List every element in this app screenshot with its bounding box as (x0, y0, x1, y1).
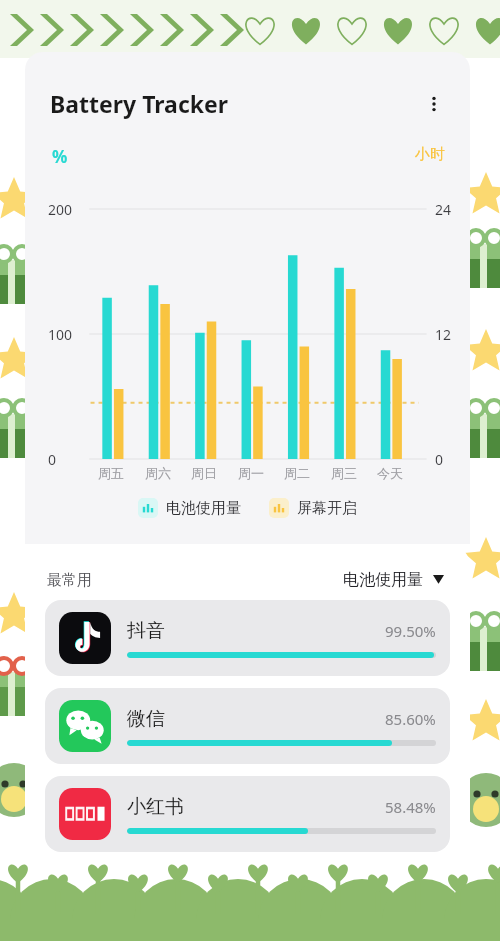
staticText: 最常用 (47, 571, 92, 590)
staticText: 24 (435, 200, 452, 219)
button[interactable]: More options (420, 90, 448, 118)
staticText: 85.60% (385, 709, 436, 729)
staticText: 100 (48, 325, 73, 344)
staticText: 99.50% (385, 621, 436, 641)
staticText: 200 (48, 200, 73, 219)
staticText: % (52, 145, 68, 168)
button[interactable]: 抖音 (45, 600, 450, 676)
staticText: 周五 (90, 465, 132, 481)
staticText: 电池使用量 (166, 499, 241, 518)
button[interactable]: 小红书 (45, 776, 450, 852)
staticText: 周三 (323, 465, 365, 481)
staticText: 屏幕开启 (297, 499, 357, 518)
button[interactable]: 微信 (45, 688, 450, 764)
staticText: 周日 (183, 465, 225, 481)
staticText: 周六 (137, 465, 179, 481)
staticText: 58.48% (385, 797, 436, 817)
staticText: 0 (435, 450, 444, 469)
staticText: 周一 (230, 465, 272, 481)
staticText: 小时 (415, 145, 445, 164)
button[interactable]: 电池使用量 (135, 495, 244, 521)
staticText: 周二 (276, 465, 318, 481)
staticText: 0 (48, 450, 57, 469)
staticText: 小红书 (127, 795, 184, 819)
staticText: 抖音 (127, 619, 165, 643)
staticText: 电池使用量 (343, 570, 423, 590)
staticText: 今天 (369, 465, 411, 481)
staticText: 12 (435, 325, 452, 344)
staticText: 微信 (127, 707, 165, 731)
staticText: Battery Tracker (50, 88, 229, 119)
button[interactable]: 电池使用量 (339, 566, 448, 594)
button[interactable]: 屏幕开启 (266, 495, 360, 521)
